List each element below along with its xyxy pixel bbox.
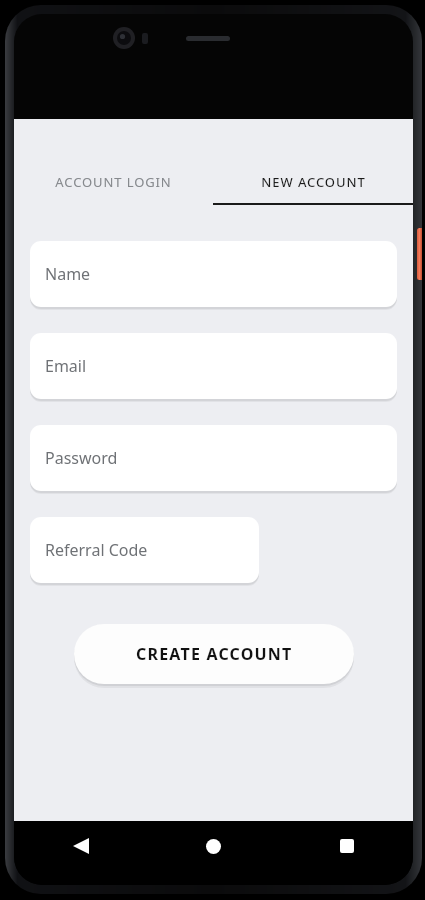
button[interactable]: Home [147, 821, 280, 871]
staticText: ACCOUNT LOGIN [55, 173, 172, 191]
staticText: Email [45, 355, 87, 377]
staticText: NEW ACCOUNT [261, 173, 366, 191]
button[interactable]: CREATE ACCOUNT [74, 624, 354, 684]
button[interactable]: NEW ACCOUNT [213, 161, 413, 205]
button[interactable]: Recent apps [280, 821, 413, 871]
staticText: Password [45, 447, 118, 469]
button[interactable]: Password [30, 425, 397, 491]
button[interactable]: Name [30, 241, 397, 307]
staticText: Name [45, 263, 91, 285]
button[interactable]: Referral Code [30, 517, 259, 583]
staticText: Referral Code [45, 539, 148, 561]
button[interactable]: ACCOUNT LOGIN [14, 161, 213, 205]
staticText: CREATE ACCOUNT [136, 643, 293, 665]
button[interactable]: Back [14, 821, 147, 871]
button[interactable]: Email [30, 333, 397, 399]
